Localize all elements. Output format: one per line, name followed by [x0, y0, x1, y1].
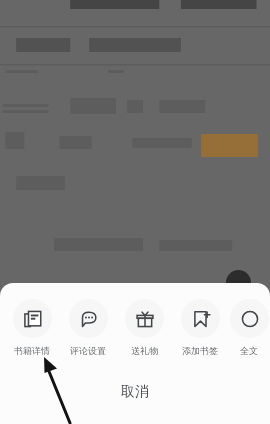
staticText: 取消 [121, 383, 149, 401]
button[interactable]: Add bookmark [172, 299, 228, 356]
staticText: 送礼物 [131, 345, 158, 356]
button[interactable]: Comment settings [60, 299, 116, 356]
button[interactable]: Send gift [116, 299, 172, 356]
button[interactable]: 取消 [0, 373, 270, 411]
staticText: 评论设置 [70, 345, 106, 356]
staticText: 书籍详情 [14, 345, 50, 356]
button[interactable]: Full text [228, 299, 270, 356]
button[interactable]: Book details [4, 299, 60, 356]
staticText: 添加书签 [182, 345, 218, 356]
staticText: 全文 [240, 345, 258, 356]
